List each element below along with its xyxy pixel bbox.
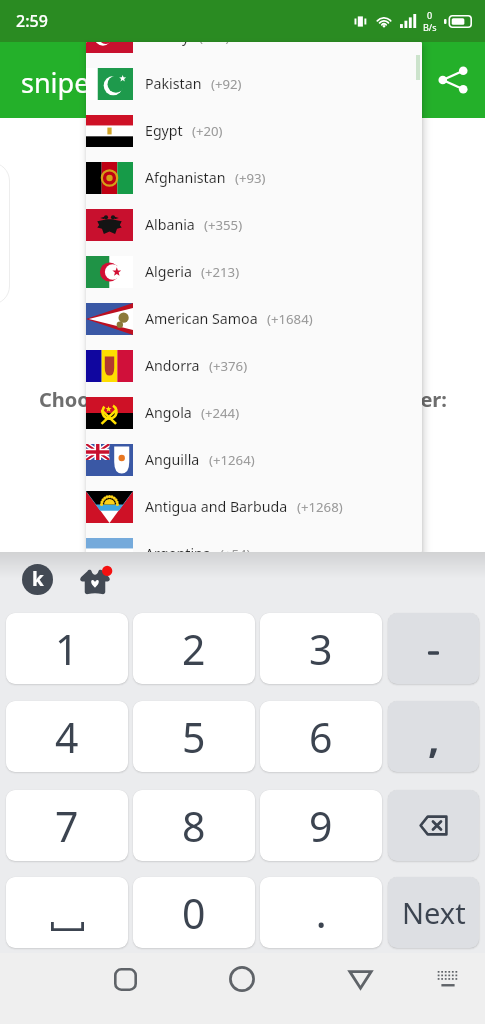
staticText: (+92) [211, 75, 242, 93]
staticText: Next [402, 893, 466, 932]
button[interactable]: Backspace [388, 790, 479, 861]
button[interactable] [388, 613, 479, 684]
other: Backspace [419, 815, 448, 836]
button[interactable]: 0 [133, 877, 255, 948]
staticText: (+93) [235, 169, 266, 187]
staticText: Algeria [145, 262, 192, 281]
staticText: 0 [427, 9, 433, 21]
staticText: , [428, 710, 440, 764]
button[interactable]: Turkey [86, 42, 422, 60]
button[interactable]: Algeria [86, 248, 422, 295]
staticText: (+213) [201, 263, 240, 281]
staticText: (+355) [204, 216, 243, 234]
staticText: Anguilla [145, 450, 200, 469]
button[interactable]: 7 [6, 790, 128, 861]
button[interactable]: Space [6, 877, 128, 948]
button[interactable]: 6 [260, 701, 382, 772]
staticText: 6 [309, 709, 333, 765]
staticText: B/s [423, 21, 437, 33]
staticText: American Samoa [145, 309, 258, 328]
staticText: Turkey [145, 42, 190, 46]
button[interactable]: Anguilla [86, 436, 422, 483]
button[interactable]: Egypt [86, 107, 422, 154]
button[interactable]: Switch keyboard [424, 955, 472, 1003]
staticText: Antigua and Barbuda [145, 497, 288, 516]
button[interactable]: Albania [86, 201, 422, 248]
button[interactable]: Afghanistan [86, 154, 422, 201]
staticText: sniper [21, 64, 101, 101]
button[interactable]: 1 [6, 613, 128, 684]
button[interactable]: Pakistan [86, 60, 422, 107]
staticText: 1 [55, 621, 79, 677]
button[interactable]: 5 [133, 701, 255, 772]
button[interactable]: 9 [260, 790, 382, 861]
staticText: (+1268) [297, 498, 343, 516]
staticText: Angola [145, 403, 192, 422]
button[interactable]: Home [218, 955, 266, 1003]
button[interactable]: Stickers [76, 561, 114, 599]
button[interactable]: Antigua and Barbuda [86, 483, 422, 530]
staticText: (+1264) [209, 451, 255, 469]
staticText: (+90) [199, 42, 230, 46]
button[interactable]: Keyboard menu [22, 564, 53, 595]
button[interactable]: 8 [133, 790, 255, 861]
staticText: 2 [182, 621, 206, 677]
staticText: Andorra [145, 356, 200, 375]
button[interactable]: . [260, 877, 382, 948]
staticText: (+1684) [267, 310, 313, 328]
staticText: Pakistan [145, 74, 202, 93]
button[interactable]: Angola [86, 389, 422, 436]
staticText: . [316, 887, 327, 939]
staticText: 8 [182, 798, 206, 854]
staticText: k [32, 566, 44, 592]
button[interactable]: Argentina [86, 530, 422, 552]
button[interactable]: Andorra [86, 342, 422, 389]
staticText: (+244) [201, 404, 240, 422]
staticText: 7 [55, 798, 79, 854]
button[interactable]: , [388, 701, 479, 772]
staticText: 9 [309, 798, 333, 854]
button[interactable]: Recents [101, 955, 149, 1003]
button[interactable]: Next [388, 877, 479, 948]
staticText: Afghanistan [145, 168, 226, 187]
staticText: (+20) [192, 122, 223, 140]
button[interactable]: 2 [133, 613, 255, 684]
staticText: 4 [55, 709, 79, 765]
staticText: Albania [145, 215, 195, 234]
button[interactable]: 4 [6, 701, 128, 772]
button[interactable]: Back [336, 955, 384, 1003]
staticText: 0 [182, 885, 206, 941]
staticText: (+376) [209, 357, 248, 375]
staticText: (+54) [220, 545, 251, 552]
button[interactable]: Share [429, 56, 477, 104]
button[interactable]: American Samoa [86, 295, 422, 342]
staticText: 3 [309, 621, 333, 677]
staticText: 2:59 [16, 10, 48, 32]
staticText: Choose your country and phone number: [39, 386, 447, 413]
staticText: Argentina [145, 544, 211, 552]
staticText: 5 [182, 709, 206, 765]
button[interactable]: 3 [260, 613, 382, 684]
staticText: Egypt [145, 121, 183, 140]
